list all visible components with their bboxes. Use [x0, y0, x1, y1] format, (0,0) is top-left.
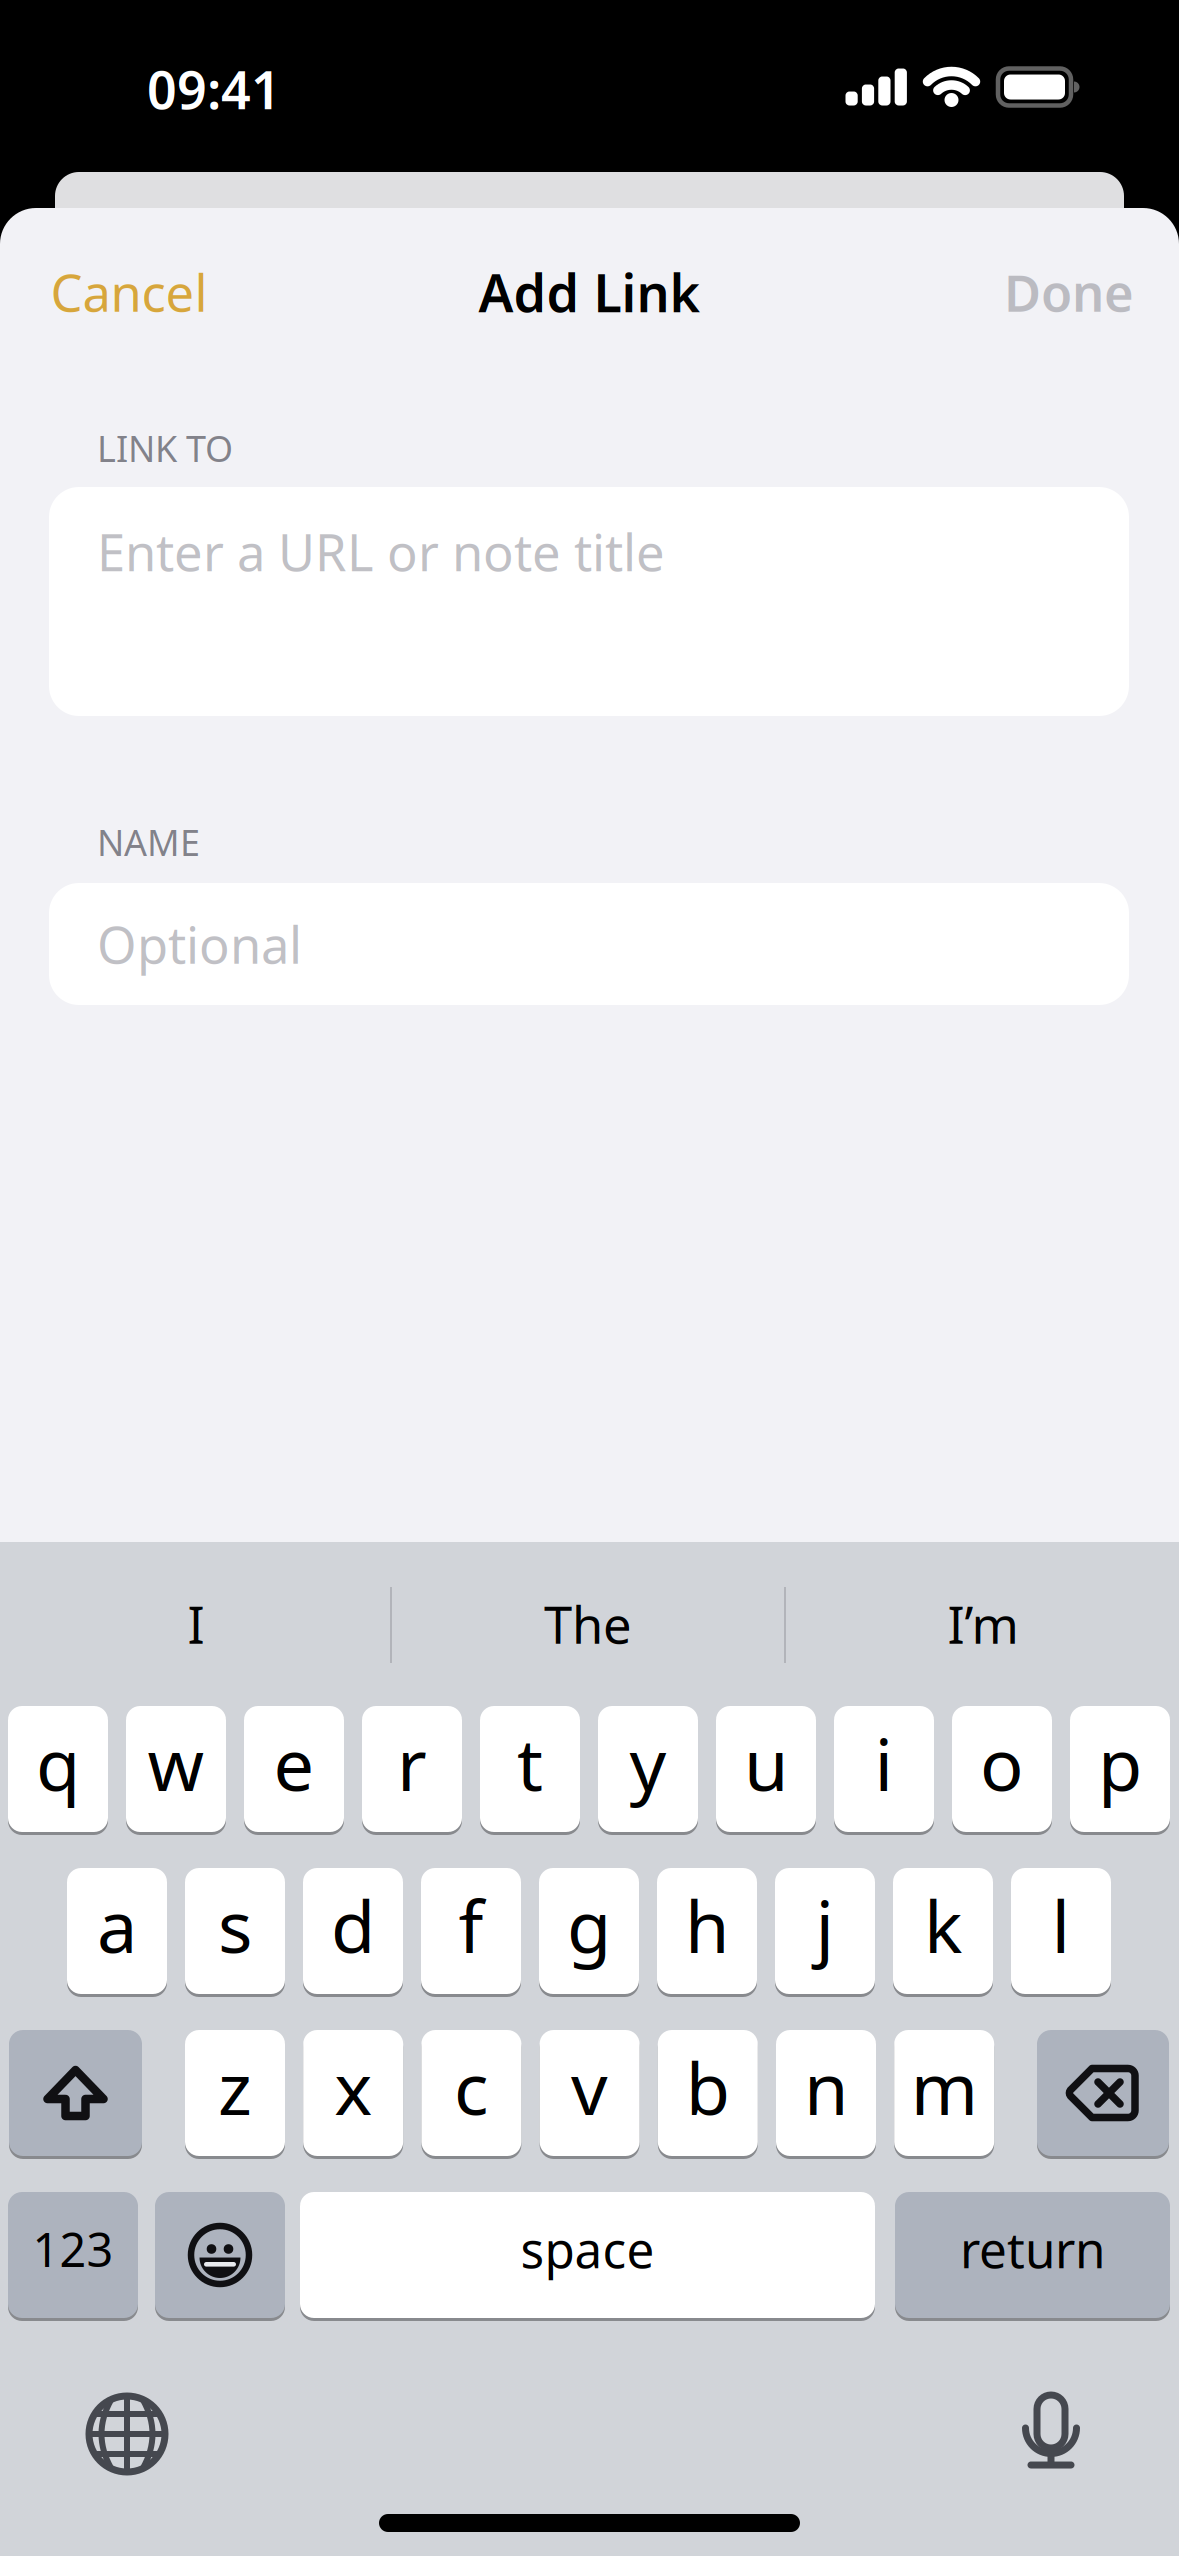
staticText: 09:41	[147, 54, 281, 124]
button[interactable]: 123	[8, 2190, 138, 2319]
button[interactable]: d	[303, 1866, 403, 1995]
staticText: q	[36, 1715, 80, 1811]
staticText: p	[1098, 1715, 1142, 1811]
staticText: I’m	[947, 1590, 1018, 1658]
button[interactable]: p	[1070, 1704, 1170, 1833]
button[interactable]: x	[303, 2028, 403, 2157]
staticText: a	[97, 1877, 137, 1973]
staticText: s	[218, 1877, 252, 1973]
staticText: d	[331, 1877, 375, 1973]
button[interactable]: h	[657, 1866, 757, 1995]
button[interactable]: space	[300, 2190, 875, 2319]
staticText: b	[686, 2039, 730, 2135]
staticText: Cancel	[50, 258, 207, 326]
staticText: The	[544, 1590, 632, 1658]
button[interactable]: l	[1011, 1866, 1111, 1995]
staticText: space	[520, 2216, 654, 2282]
staticText: r	[397, 1715, 427, 1811]
button[interactable]: I’m	[793, 1564, 1173, 1684]
staticText: l	[1051, 1877, 1070, 1973]
staticText: n	[804, 2039, 848, 2135]
button[interactable]: Emoji	[155, 2190, 285, 2319]
staticText: c	[454, 2039, 489, 2135]
button[interactable]: e	[244, 1704, 344, 1833]
button[interactable]: w	[126, 1704, 226, 1833]
staticText: u	[744, 1715, 788, 1811]
button[interactable]: i	[834, 1704, 934, 1833]
staticText: v	[571, 2039, 608, 2135]
button[interactable]: b	[658, 2028, 758, 2157]
button[interactable]: y	[598, 1704, 698, 1833]
staticText: f	[458, 1877, 483, 1973]
button[interactable]: f	[421, 1866, 521, 1995]
staticText: NAME	[97, 818, 200, 866]
staticText: e	[273, 1715, 314, 1811]
staticText: j	[815, 1877, 834, 1973]
button[interactable]: Delete	[1037, 2028, 1169, 2157]
button[interactable]: g	[539, 1866, 639, 1995]
staticText: w	[147, 1715, 204, 1811]
button[interactable]: Link to	[49, 487, 1129, 716]
button[interactable]: I	[6, 1564, 386, 1684]
button[interactable]: v	[540, 2028, 640, 2157]
button[interactable]: a	[67, 1866, 167, 1995]
staticText: i	[874, 1715, 893, 1811]
staticText: x	[334, 2039, 372, 2135]
button[interactable]: m	[894, 2028, 994, 2157]
staticText: LINK TO	[97, 424, 233, 472]
staticText: g	[567, 1877, 611, 1973]
button[interactable]: s	[185, 1866, 285, 1995]
staticText: 123	[32, 2218, 113, 2280]
staticText: y	[629, 1715, 666, 1811]
button[interactable]: return	[895, 2190, 1170, 2319]
staticText: Done	[1004, 258, 1134, 326]
button[interactable]: Done	[1004, 258, 1134, 326]
staticText: return	[960, 2216, 1105, 2282]
button[interactable]: z	[185, 2028, 285, 2157]
button[interactable]: Shift	[9, 2028, 142, 2157]
button[interactable]: n	[776, 2028, 876, 2157]
staticText: h	[685, 1877, 729, 1973]
staticText: m	[911, 2039, 978, 2135]
staticText: k	[924, 1877, 962, 1973]
button[interactable]: Next keyboard	[67, 2374, 187, 2494]
button[interactable]: Cancel	[50, 258, 207, 326]
button[interactable]: Dictation	[991, 2371, 1111, 2491]
button[interactable]: o	[952, 1704, 1052, 1833]
button[interactable]: j	[775, 1866, 875, 1995]
button[interactable]: u	[716, 1704, 816, 1833]
button[interactable]: t	[480, 1704, 580, 1833]
button[interactable]: q	[8, 1704, 108, 1833]
staticText: Enter a URL or note title	[97, 518, 665, 585]
staticText: o	[980, 1715, 1024, 1811]
staticText: I	[187, 1590, 204, 1658]
button[interactable]: r	[362, 1704, 462, 1833]
button[interactable]: The	[398, 1564, 778, 1684]
staticText: z	[218, 2039, 252, 2135]
staticText: Add Link	[478, 257, 700, 327]
button[interactable]: Name	[49, 883, 1129, 1005]
button[interactable]: c	[421, 2028, 521, 2157]
button[interactable]: k	[893, 1866, 993, 1995]
staticText: t	[517, 1715, 543, 1811]
staticText: Optional	[97, 910, 302, 978]
